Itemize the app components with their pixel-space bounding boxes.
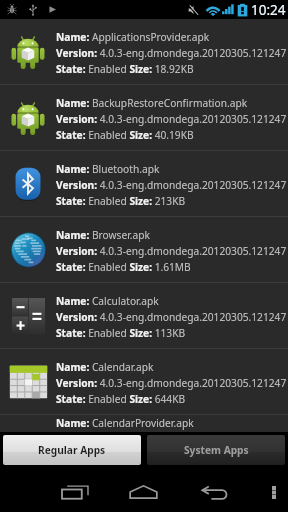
button[interactable]: Name: BackupRestoreConfirmation.apk [0, 85, 288, 150]
staticText: Version: 4.0.3-eng.dmondega.20120305.121… [56, 376, 287, 390]
staticText: Name: Bluetooth.apk [56, 162, 160, 176]
staticText: System Apps [184, 443, 249, 457]
button[interactable]: Name: Bluetooth.apk [0, 151, 288, 216]
staticText: State: Enabled Size: 113KB [56, 326, 186, 340]
staticText: State: Enabled Size: 18.92KB [56, 62, 194, 76]
button[interactable]: Name: Calculator.apk [0, 283, 288, 348]
button[interactable]: Recents [51, 475, 99, 505]
staticText: Name: Browser.apk [56, 228, 150, 242]
staticText: State: Enabled Size: 40.19KB [56, 128, 194, 142]
staticText: State: Enabled Size: 644KB [56, 392, 186, 406]
staticText: Version: 4.0.3-eng.dmondega.20120305.121… [56, 112, 287, 126]
staticText: Name: Calculator.apk [56, 294, 159, 308]
staticText: Name: Calendar.apk [56, 360, 154, 374]
staticText: Version: 4.0.3-eng.dmondega.20120305.121… [56, 310, 287, 324]
button[interactable]: Name: ApplicationsProvider.apk [0, 19, 288, 84]
staticText: Regular Apps [38, 443, 106, 457]
staticText: Name: BackupRestoreConfirmation.apk [56, 96, 248, 110]
staticText: State: Enabled Size: 1.61MB [56, 260, 191, 274]
button[interactable]: Name: Calendar.apk [0, 349, 288, 414]
button[interactable]: Back [190, 475, 238, 505]
button[interactable]: Name: CalendarProvider.apk [0, 415, 288, 432]
staticText: Version: 4.0.3-eng.dmondega.20120305.121… [56, 178, 287, 192]
button[interactable]: Home [119, 475, 167, 505]
staticText: Name: ApplicationsProvider.apk [56, 30, 210, 44]
button[interactable]: System Apps [147, 435, 285, 465]
staticText: State: Enabled Size: 213KB [56, 194, 186, 208]
staticText: Version: 4.0.3-eng.dmondega.20120305.121… [56, 46, 287, 60]
button[interactable]: Menu [260, 475, 288, 505]
staticText: Name: CalendarProvider.apk [56, 416, 194, 430]
staticText: 10:24 [251, 1, 286, 19]
button[interactable]: Regular Apps [3, 435, 141, 465]
staticText: Version: 4.0.3-eng.dmondega.20120305.121… [56, 244, 287, 258]
button[interactable]: Name: Browser.apk [0, 217, 288, 282]
